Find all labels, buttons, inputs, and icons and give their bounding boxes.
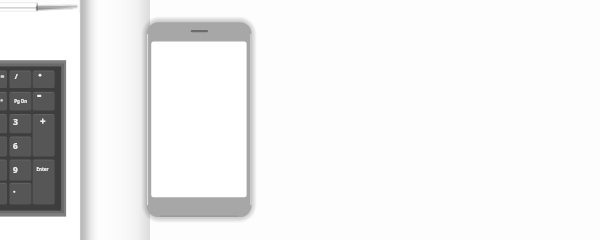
other: Blank smartphone on a white desk next to… [0,0,600,240]
